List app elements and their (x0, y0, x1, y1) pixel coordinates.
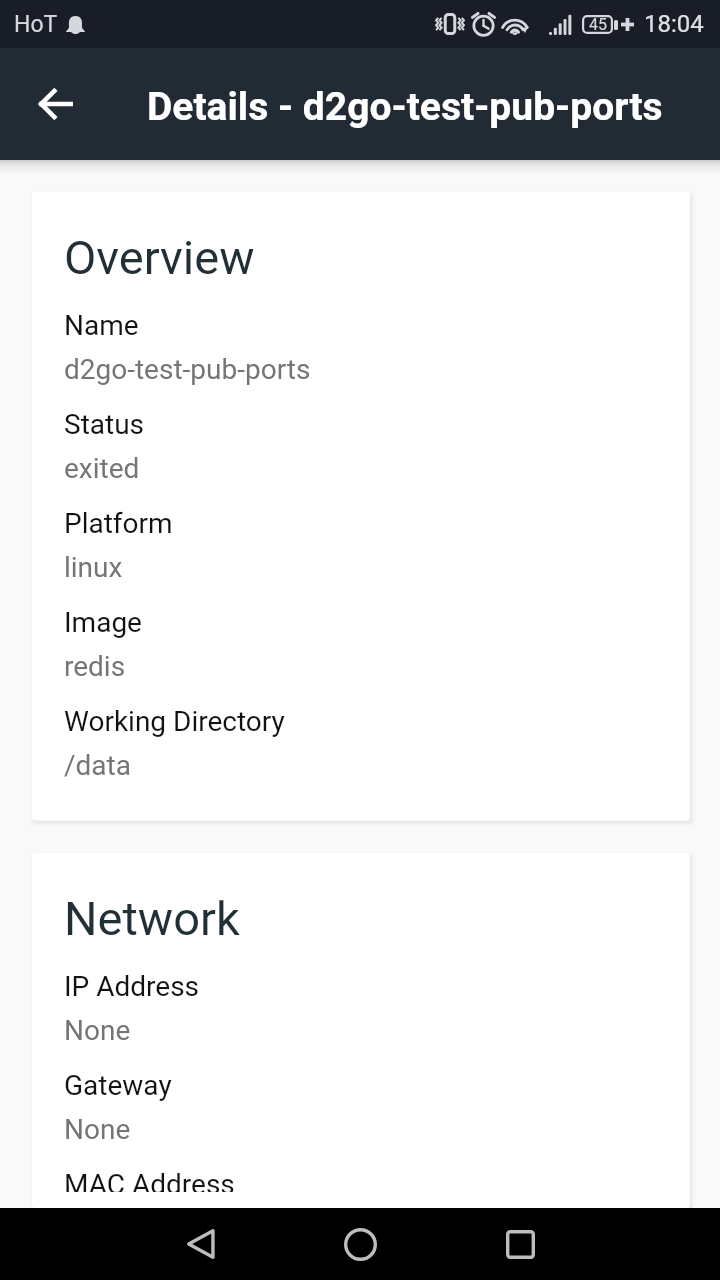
staticText: linux (64, 551, 123, 584)
staticText: None (64, 1113, 131, 1146)
staticText: exited (64, 452, 140, 485)
staticText: 45 (589, 15, 607, 34)
staticText: IP Address (64, 970, 200, 1003)
staticText: Details - d2go-test-pub-ports (147, 84, 663, 130)
button[interactable]: Back (0, 48, 112, 160)
button[interactable]: Recents (472, 1208, 568, 1280)
staticText: Gateway (64, 1069, 172, 1102)
button[interactable]: Home (312, 1208, 408, 1280)
staticText: None (64, 1014, 131, 1047)
staticText: Status (64, 408, 145, 441)
staticText: 18:04 (644, 10, 704, 38)
staticText: Overview (64, 230, 255, 285)
staticText: Platform (64, 507, 173, 540)
staticText: /data (64, 749, 131, 782)
staticText: Image (64, 606, 142, 639)
staticText: HoT (14, 11, 58, 38)
button[interactable]: Network (32, 853, 690, 1208)
staticText: Working Directory (64, 705, 285, 738)
staticText: d2go-test-pub-ports (64, 353, 311, 386)
staticText: Name (64, 309, 139, 342)
button[interactable]: Overview (32, 192, 690, 820)
staticText: MAC Address (64, 1168, 235, 1192)
staticText: redis (64, 650, 126, 683)
button[interactable]: Back (152, 1208, 248, 1280)
staticText: Network (64, 891, 240, 946)
